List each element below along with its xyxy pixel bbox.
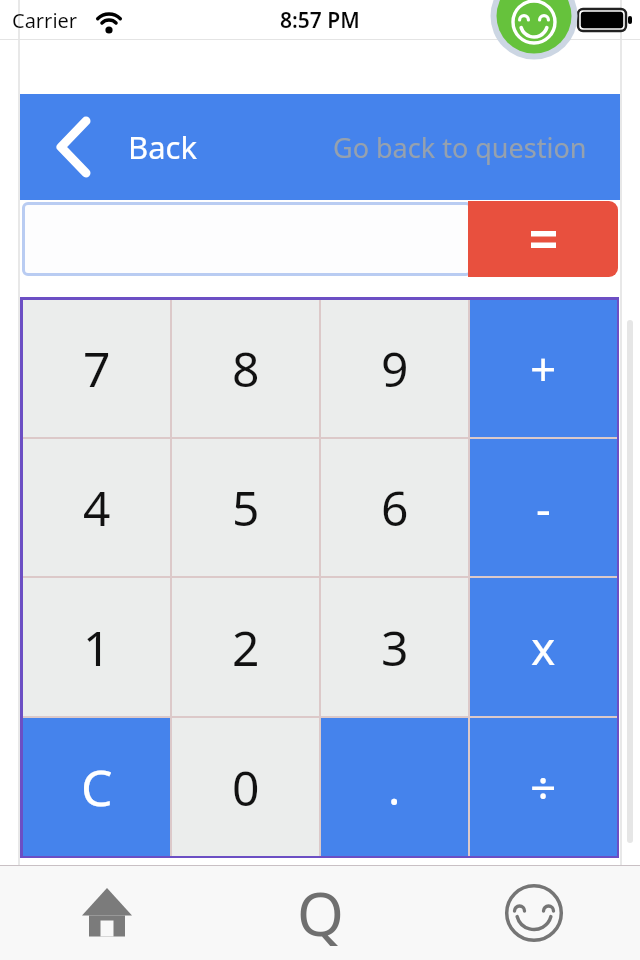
- button[interactable]: [488, 0, 580, 62]
- button[interactable]: C: [23, 718, 170, 856]
- staticText: Q: [297, 872, 344, 954]
- staticText: 2: [232, 615, 260, 680]
- staticText: 6: [381, 475, 409, 540]
- staticText: 4: [83, 475, 111, 540]
- button[interactable]: +: [470, 300, 617, 437]
- button[interactable]: 4: [23, 439, 170, 576]
- button[interactable]: 9: [321, 300, 468, 437]
- button[interactable]: 7: [23, 300, 170, 437]
- staticText: +: [530, 337, 557, 400]
- staticText: 3: [381, 615, 409, 680]
- staticText: -: [536, 476, 551, 539]
- staticText: .: [388, 756, 401, 819]
- staticText: Carrier: [12, 7, 78, 34]
- staticText: Go back to question: [333, 129, 587, 166]
- staticText: 8:57 PM: [280, 6, 360, 35]
- staticText: 5: [232, 475, 260, 540]
- staticText: 0: [232, 755, 260, 820]
- button[interactable]: -: [470, 439, 617, 576]
- staticText: x: [531, 616, 556, 679]
- button[interactable]: [0, 865, 214, 960]
- button[interactable]: 0: [172, 718, 319, 856]
- button[interactable]: ÷: [470, 718, 617, 856]
- button[interactable]: Q: [214, 865, 427, 960]
- button[interactable]: 6: [321, 439, 468, 576]
- button[interactable]: 8: [172, 300, 319, 437]
- staticText: C: [81, 753, 113, 821]
- staticText: ÷: [530, 756, 557, 819]
- button[interactable]: 5: [172, 439, 319, 576]
- staticText: Back: [128, 126, 197, 168]
- button[interactable]: .: [321, 718, 468, 856]
- button[interactable]: 1: [23, 578, 170, 716]
- button[interactable]: [427, 865, 640, 960]
- staticText: 7: [83, 336, 111, 401]
- button[interactable]: [58, 112, 102, 182]
- staticText: 8: [232, 336, 260, 401]
- button[interactable]: 2: [172, 578, 319, 716]
- staticText: 9: [381, 336, 409, 401]
- button[interactable]: x: [470, 578, 617, 716]
- button[interactable]: 3: [321, 578, 468, 716]
- button[interactable]: [468, 201, 618, 277]
- staticText: 1: [83, 615, 111, 680]
